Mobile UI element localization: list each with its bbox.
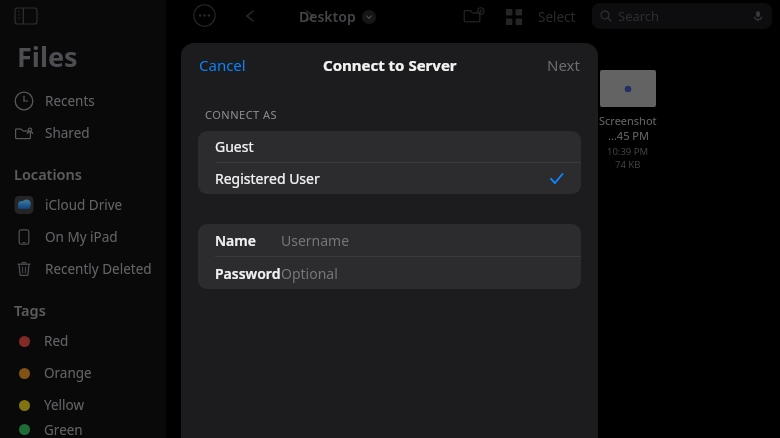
staticText: Tags <box>14 300 46 320</box>
button[interactable]: Recents <box>0 85 166 117</box>
staticText: On My iPad <box>45 228 118 246</box>
staticText: Desktop <box>299 7 356 26</box>
button[interactable]: Password <box>198 257 581 289</box>
staticText: Search <box>618 7 660 25</box>
button[interactable]: Forward <box>300 6 320 26</box>
staticText: 74 KB <box>615 158 641 171</box>
button[interactable]: Registered User <box>198 163 581 194</box>
button[interactable]: More <box>193 4 216 27</box>
staticText: ...45 PM <box>608 128 649 143</box>
staticText: Name <box>215 231 256 250</box>
staticText: Cancel <box>199 55 246 75</box>
staticText: Connect to Server <box>323 55 457 75</box>
button[interactable]: Guest <box>198 131 581 162</box>
staticText: Password <box>215 264 281 283</box>
button[interactable]: Orange <box>0 357 166 389</box>
staticText: Guest <box>215 137 254 156</box>
button[interactable]: Back <box>240 6 260 26</box>
button[interactable]: Next <box>543 49 584 81</box>
button[interactable] <box>600 70 656 107</box>
button[interactable]: On My iPad <box>0 221 166 253</box>
staticText: Green <box>44 421 83 438</box>
button[interactable]: Name <box>198 224 581 256</box>
staticText: Yellow <box>44 396 85 414</box>
staticText: Registered User <box>215 169 320 188</box>
button[interactable]: Shared <box>0 117 166 149</box>
staticText: Optional <box>281 264 338 283</box>
button[interactable]: Select <box>534 4 580 30</box>
staticText: Orange <box>44 364 92 382</box>
button[interactable]: Dictate <box>752 10 764 22</box>
staticText: Next <box>547 55 580 75</box>
staticText: iCloud Drive <box>45 196 123 214</box>
staticText: Recents <box>45 92 95 110</box>
button[interactable]: Yellow <box>0 389 166 421</box>
button[interactable]: Grid View <box>505 8 523 26</box>
button[interactable]: iCloud Drive <box>0 189 166 221</box>
staticText: Screenshot <box>599 113 657 128</box>
button[interactable]: Toggle Sidebar <box>14 6 38 26</box>
staticText: Shared <box>45 124 90 142</box>
staticText: CONNECT AS <box>205 107 278 122</box>
staticText: Select <box>538 8 576 26</box>
staticText: Recently Deleted <box>45 260 152 278</box>
staticText: Red <box>44 332 69 350</box>
button[interactable]: Search <box>592 3 772 29</box>
button[interactable]: New Folder <box>463 7 484 25</box>
button[interactable]: Red <box>0 325 166 357</box>
staticText: Files <box>17 38 78 75</box>
button[interactable]: Green <box>0 421 166 438</box>
staticText: 10:39 PM <box>607 145 649 158</box>
button[interactable]: Cancel <box>195 49 250 81</box>
staticText: Locations <box>14 164 82 184</box>
button[interactable]: Desktop <box>299 7 376 26</box>
staticText: Username <box>281 231 350 250</box>
button[interactable]: Recently Deleted <box>0 253 166 285</box>
